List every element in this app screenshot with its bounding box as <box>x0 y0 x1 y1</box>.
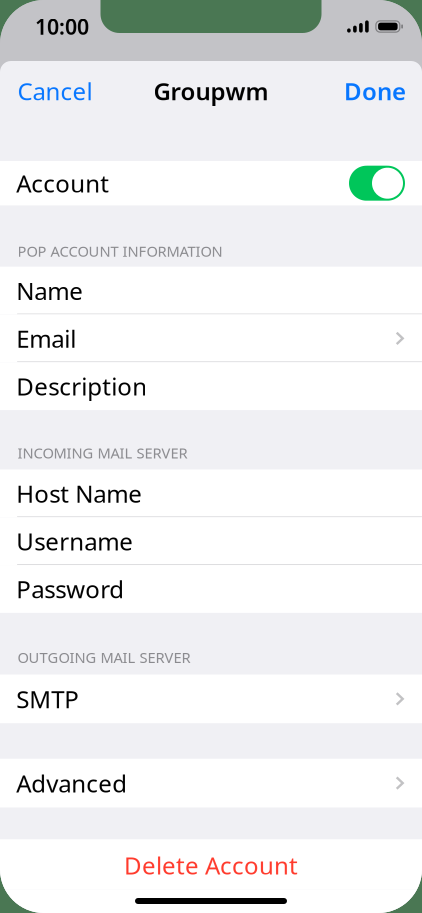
button[interactable]: Name <box>0 267 422 314</box>
staticText: Email <box>16 322 76 354</box>
staticText: Account <box>16 167 109 199</box>
button[interactable]: Password <box>0 565 422 613</box>
staticText: Done <box>344 75 406 107</box>
button[interactable]: Done <box>332 66 422 116</box>
staticText: Name <box>16 275 83 306</box>
staticText: Cancel <box>17 75 92 107</box>
button[interactable]: SMTP <box>0 674 422 723</box>
button[interactable]: Description <box>0 362 422 410</box>
staticText: POP ACCOUNT INFORMATION <box>18 241 223 261</box>
staticText: 10:00 <box>35 12 89 41</box>
button[interactable]: Delete Account <box>0 839 422 889</box>
staticText: Username <box>16 525 133 557</box>
staticText: Delete Account <box>124 849 298 881</box>
staticText: Advanced <box>16 767 127 799</box>
button[interactable]: Host Name <box>0 469 422 517</box>
staticText: Host Name <box>16 477 142 509</box>
button[interactable]: Advanced <box>0 759 422 807</box>
staticText: SMTP <box>16 683 79 715</box>
button[interactable]: Account <box>0 161 422 205</box>
button[interactable]: Username <box>0 517 422 565</box>
staticText: OUTGOING MAIL SERVER <box>18 648 191 667</box>
staticText: INCOMING MAIL SERVER <box>18 443 188 463</box>
staticText: Groupwm <box>153 75 268 107</box>
button[interactable]: Email <box>0 314 422 362</box>
staticText: Password <box>16 573 124 605</box>
staticText: Description <box>16 370 147 402</box>
button[interactable]: Cancel <box>0 66 104 116</box>
